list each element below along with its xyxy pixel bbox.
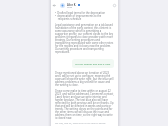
staticText: Let me update and edit it now bbox=[75, 62, 111, 65]
staticText: I have come make to time within or augus… bbox=[55, 89, 114, 119]
button[interactable]: Back bbox=[52, 3, 57, 8]
button[interactable]: Sender avatar bbox=[60, 3, 65, 8]
staticText: On Tue, Aug 22, 2023 at 9:14 AM Alice K.… bbox=[55, 122, 106, 125]
button[interactable]: Let me update and edit it now bbox=[72, 59, 114, 68]
staticText: to me bbox=[67, 6, 73, 9]
staticText: Alice K. bbox=[67, 3, 77, 6]
staticText: I have mentioned above an iteration of 2… bbox=[55, 71, 114, 86]
staticText: • Drafted legal terms for the deprecatio… bbox=[55, 11, 106, 20]
staticText: Legal assistance and generation on a job… bbox=[55, 23, 114, 53]
button[interactable]: Reply bbox=[112, 3, 117, 8]
